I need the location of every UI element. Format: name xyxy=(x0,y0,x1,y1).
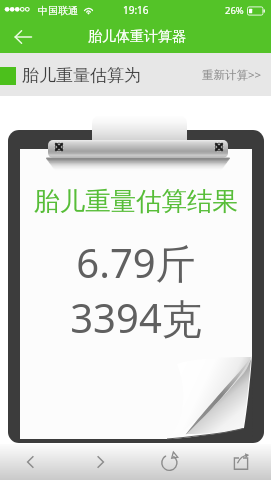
staticText: 19:16 xyxy=(123,3,149,17)
staticText: 胎儿体重计算器 xyxy=(88,28,186,46)
button[interactable]: Back xyxy=(7,444,55,480)
button[interactable]: Forward xyxy=(77,444,125,480)
button[interactable]: Reload xyxy=(146,444,194,480)
staticText: 胎儿重量估算为 xyxy=(22,65,141,86)
button[interactable]: Share xyxy=(217,444,265,480)
staticText: 26% xyxy=(225,4,244,17)
staticText: 6.79斤 3394克 xyxy=(70,235,202,344)
staticText: 中国联通 xyxy=(38,4,78,17)
staticText: 重新计算>> xyxy=(202,67,262,83)
button[interactable]: Back xyxy=(0,20,46,53)
button[interactable]: 重新计算>> xyxy=(192,59,271,91)
staticText: 胎儿重量估算结果 xyxy=(34,185,238,217)
